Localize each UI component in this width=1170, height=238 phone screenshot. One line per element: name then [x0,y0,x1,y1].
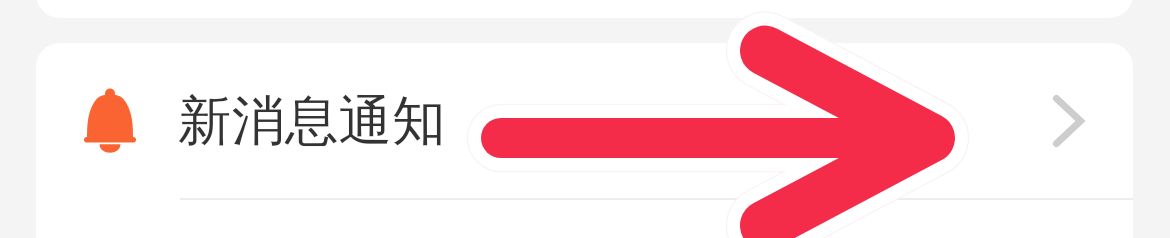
other: 新消息通知设置 [1037,85,1099,157]
button[interactable]: 新消息通知 [36,43,1133,198]
staticText: 新消息通知 [178,87,446,154]
